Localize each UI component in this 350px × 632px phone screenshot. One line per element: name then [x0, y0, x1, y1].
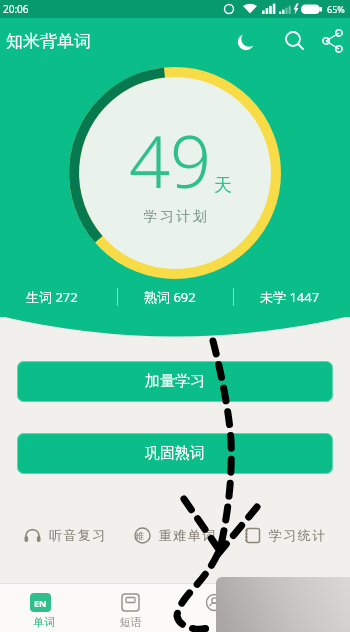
staticText: 49 [129, 111, 212, 202]
staticText: 单词 [33, 615, 55, 629]
staticText: 65% [327, 3, 345, 15]
staticText: 短语 [120, 615, 142, 629]
button[interactable] [278, 26, 310, 58]
staticText: 熟词 692 [144, 288, 196, 306]
staticText: 难 [135, 530, 144, 541]
staticText: 巩固熟词 [145, 444, 205, 463]
button[interactable]: 短语 [101, 584, 161, 632]
button[interactable] [230, 26, 262, 58]
staticText: 加量学习 [145, 372, 205, 391]
staticText: 学习统计 [268, 527, 326, 543]
button[interactable]: 听音复习 [18, 518, 114, 552]
staticText: 听音复习 [48, 527, 106, 543]
staticText: 学习计划 [142, 208, 208, 226]
staticText: EN [34, 597, 47, 609]
button[interactable]: 重难单词 [128, 518, 224, 552]
staticText: 重难单词 [158, 527, 216, 543]
staticText: 未学 1447 [260, 288, 320, 306]
button[interactable]: 加量学习 [17, 361, 333, 402]
button[interactable]: 学习统计 [238, 518, 334, 552]
staticText: 生词 272 [26, 288, 78, 306]
button[interactable] [318, 26, 350, 58]
button[interactable]: 巩固熟词 [17, 433, 333, 474]
staticText: 天 [214, 174, 232, 197]
button[interactable]: EN [14, 584, 74, 632]
button[interactable] [189, 584, 249, 632]
staticText: 20:06 [3, 2, 29, 16]
staticText: 知米背单词 [6, 31, 91, 52]
